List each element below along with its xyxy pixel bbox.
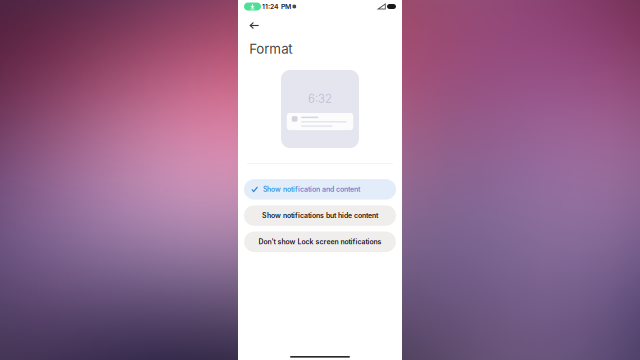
staticText: 6:32 xyxy=(308,92,332,105)
staticText: Show notification and content xyxy=(263,185,360,194)
button[interactable]: Show notification and content xyxy=(244,179,396,200)
staticText: 11:24 PM xyxy=(262,2,291,11)
button[interactable]: Don't show Lock screen notifications xyxy=(244,231,396,252)
staticText: Show notifications but hide content xyxy=(262,211,378,220)
staticText: Format xyxy=(249,41,292,57)
button[interactable]: Show notifications but hide content xyxy=(244,205,396,226)
staticText: Don't show Lock screen notifications xyxy=(258,238,381,246)
button[interactable]: Back xyxy=(246,14,263,36)
